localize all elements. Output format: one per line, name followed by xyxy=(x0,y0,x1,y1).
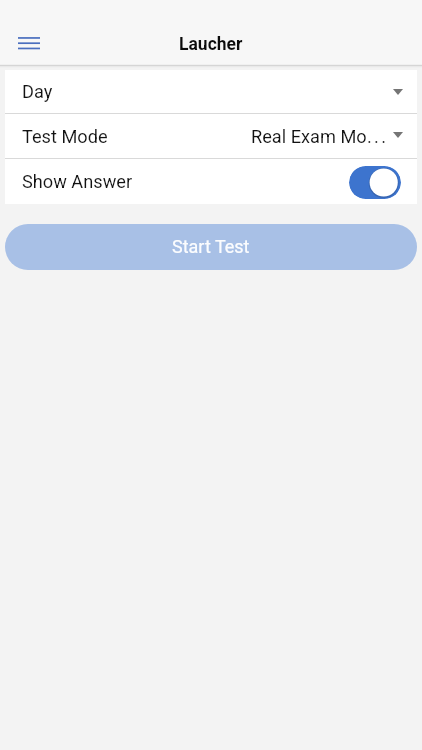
staticText: Real Exam Mo xyxy=(251,126,367,147)
staticText: Laucher xyxy=(179,34,243,55)
staticText: ... xyxy=(367,126,389,147)
button[interactable]: Start Test xyxy=(5,224,417,270)
staticText: Test Mode xyxy=(22,126,108,147)
button[interactable]: Show Answer xyxy=(349,166,401,199)
staticText: Day xyxy=(22,81,53,102)
button[interactable]: Show Answer xyxy=(5,159,417,204)
button[interactable]: Day xyxy=(5,70,417,113)
button[interactable]: Test Mode xyxy=(5,114,417,158)
staticText: Start Test xyxy=(172,236,250,257)
staticText: Show Answer xyxy=(22,171,133,192)
button[interactable]: Open navigation menu xyxy=(5,18,53,66)
